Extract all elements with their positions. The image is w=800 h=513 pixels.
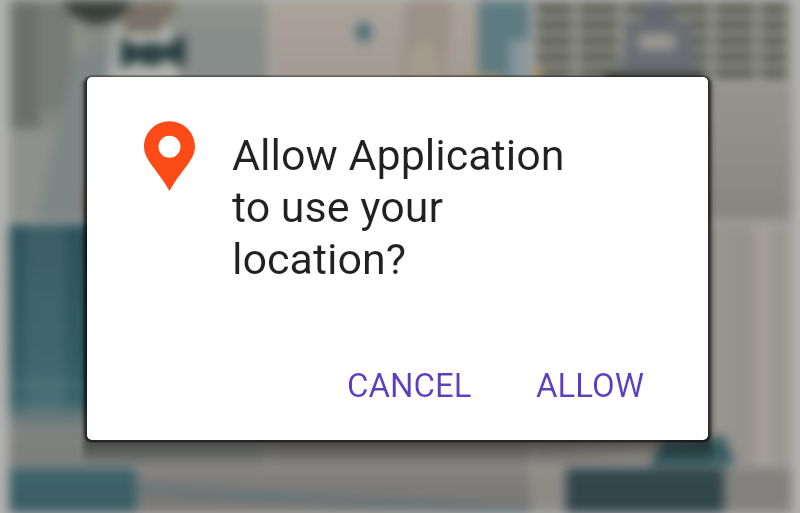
button[interactable]: CANCEL [331, 356, 488, 415]
button[interactable]: ALLOW [520, 356, 661, 415]
staticText: ALLOW [536, 366, 645, 405]
staticText: CANCEL [347, 366, 472, 405]
staticText: Allow Application to use your location? [232, 130, 565, 285]
